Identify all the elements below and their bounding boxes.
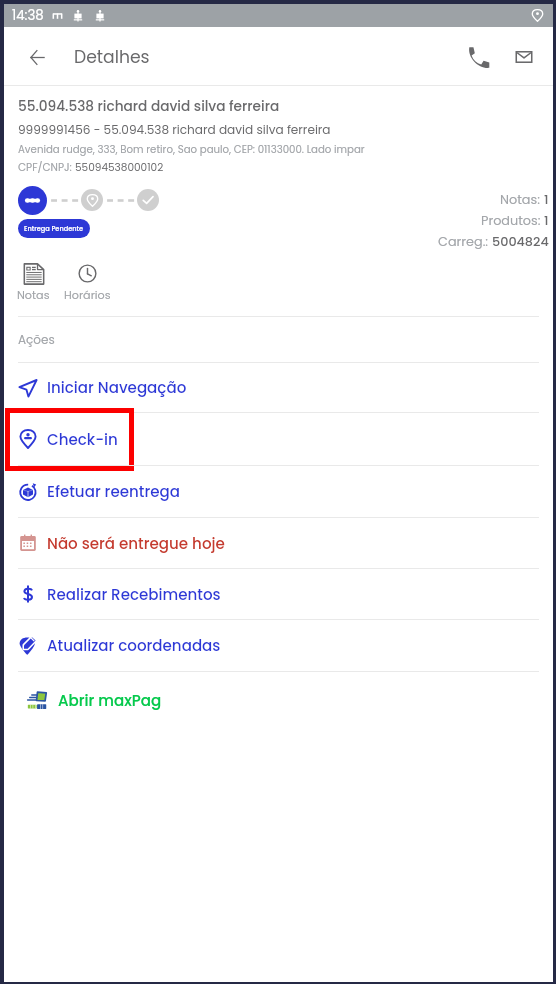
button[interactable]: Horários xyxy=(59,263,116,303)
button[interactable]: Efetuar reentrega xyxy=(4,466,553,517)
staticText: Realizar Recebimentos xyxy=(47,584,221,605)
staticText: Check-in xyxy=(47,429,118,450)
button[interactable]: Call xyxy=(455,34,501,80)
staticText: 55094538000102 xyxy=(75,160,164,175)
staticText: Notas: xyxy=(500,191,544,209)
staticText: Iniciar Navegação xyxy=(47,377,187,398)
staticText: Entrega Pendente xyxy=(24,224,84,233)
staticText: Ações xyxy=(18,331,55,348)
staticText: Abrir maxPag xyxy=(58,690,162,711)
staticText: Produtos: xyxy=(481,212,544,230)
staticText: Carreg.: xyxy=(438,233,492,251)
staticText: 9999991456 - 55.094.538 richard david si… xyxy=(18,121,331,138)
staticText: Detalhes xyxy=(74,45,150,69)
staticText: 1 xyxy=(544,191,549,209)
staticText: Avenida rudge, 333, Bom retiro, Sao paul… xyxy=(18,142,365,156)
button[interactable]: Check-in xyxy=(4,413,553,465)
staticText: Notas xyxy=(17,287,50,303)
button[interactable]: Realizar Recebimentos xyxy=(4,569,553,619)
staticText: Horários xyxy=(64,287,111,303)
button[interactable]: Notas xyxy=(12,263,55,303)
button[interactable]: Back xyxy=(14,34,60,80)
button[interactable]: Email xyxy=(501,34,547,80)
button[interactable]: Atualizar coordenadas xyxy=(4,620,553,671)
staticText: CPF/CNPJ: xyxy=(18,160,75,175)
staticText: 1 xyxy=(544,212,549,230)
button[interactable]: Abrir maxPag xyxy=(4,672,553,728)
button[interactable]: Não será entregue hoje xyxy=(4,518,553,568)
staticText: Efetuar reentrega xyxy=(47,481,181,502)
staticText: Atualizar coordenadas xyxy=(47,635,221,656)
staticText: Não será entregue hoje xyxy=(47,533,225,554)
button[interactable]: Iniciar Navegação xyxy=(4,363,553,412)
staticText: 14:38 xyxy=(12,6,44,25)
staticText: 55.094.538 richard david silva ferreira xyxy=(18,97,280,116)
staticText: 5004824 xyxy=(492,233,549,251)
